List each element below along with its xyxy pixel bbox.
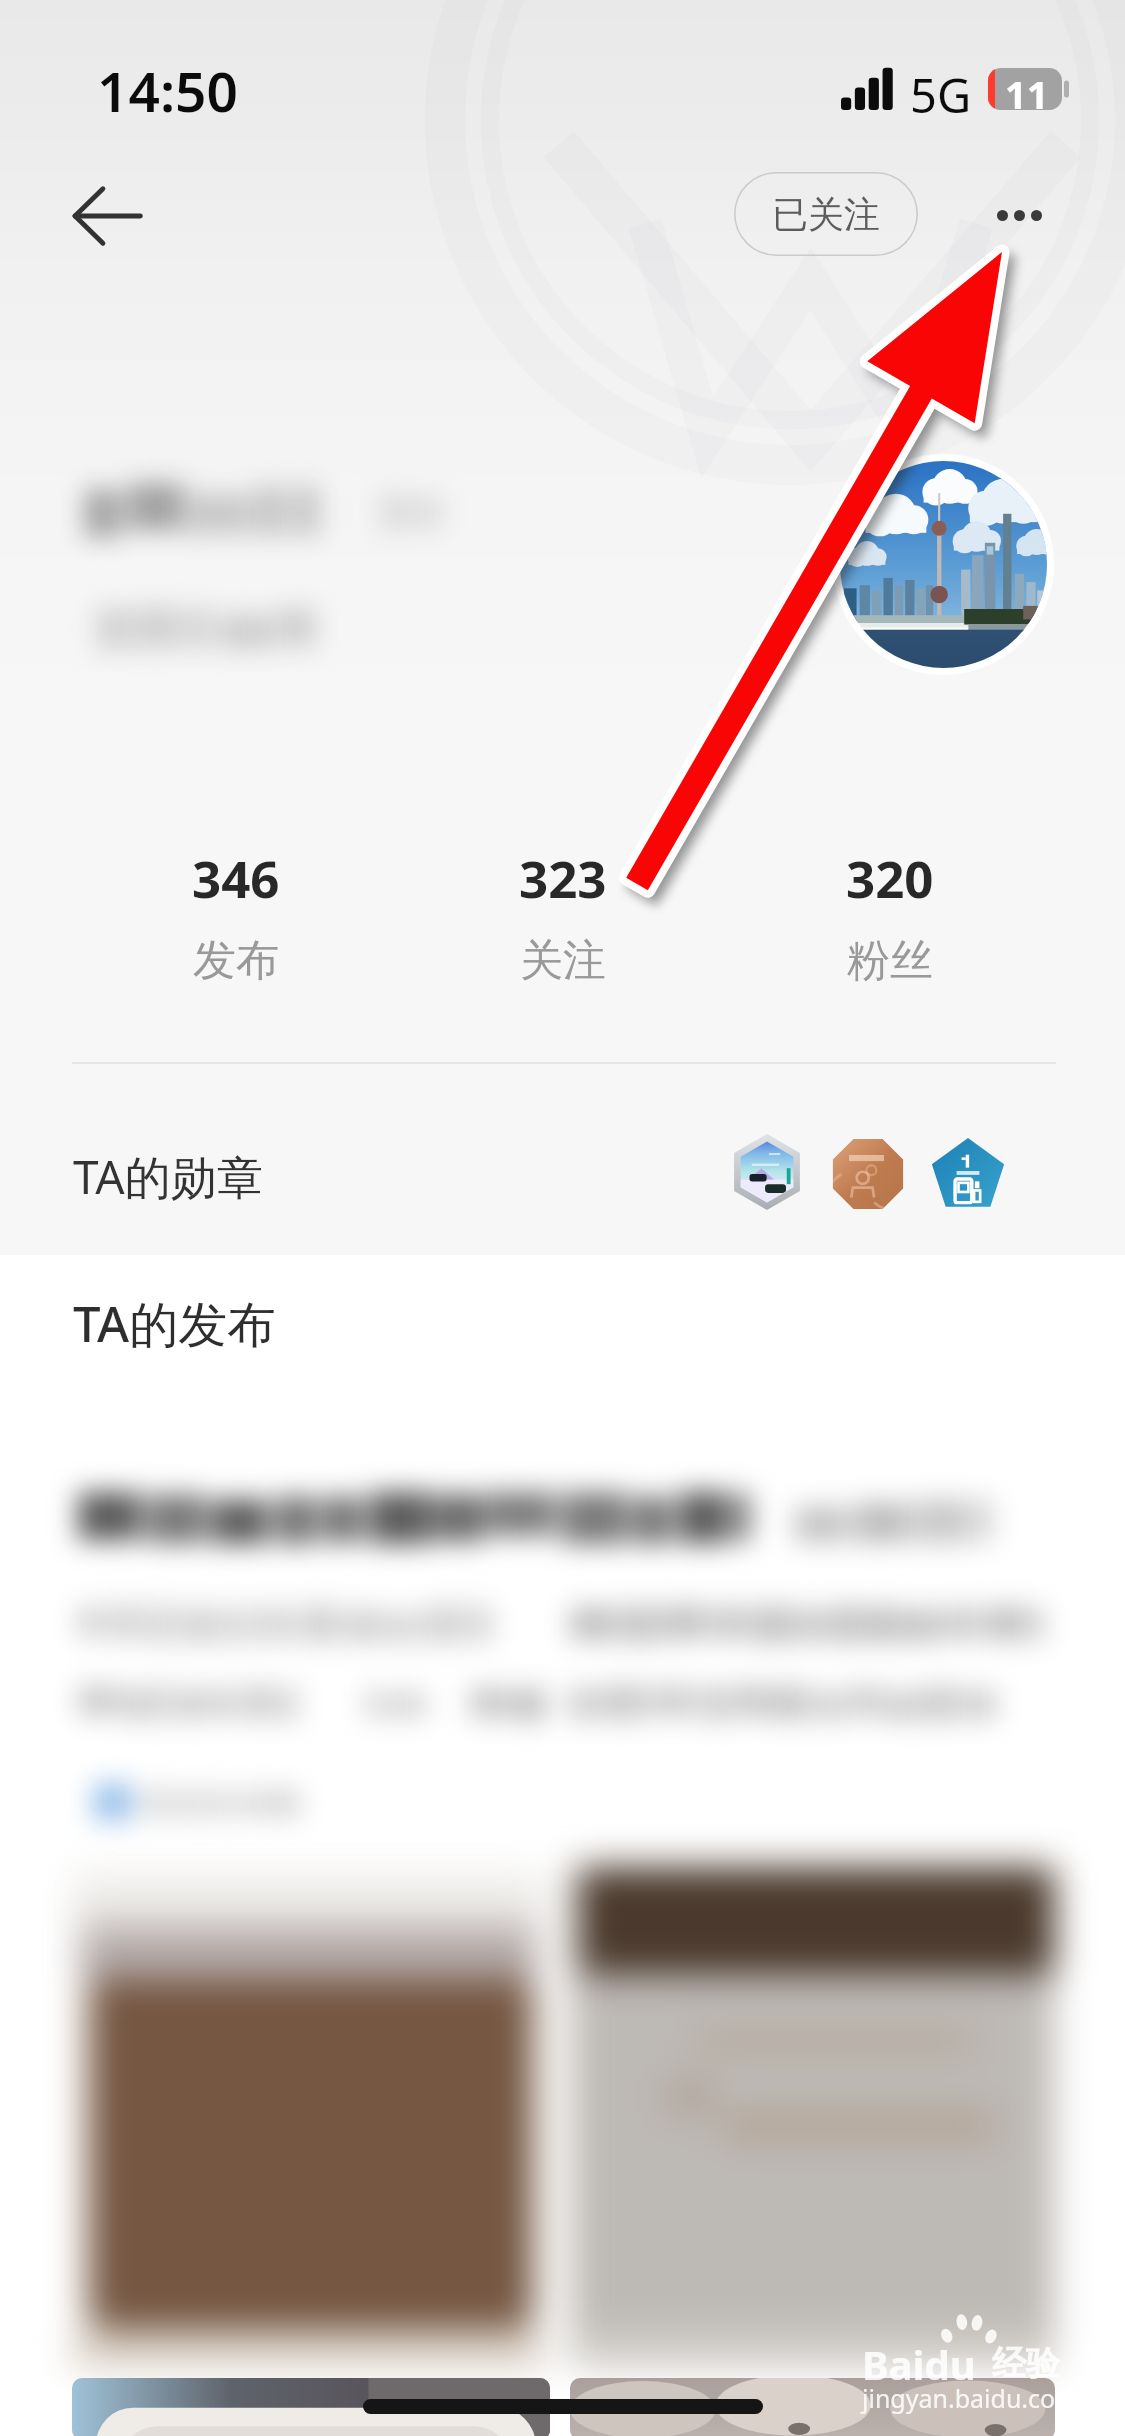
staticText: 11 <box>1005 68 1049 110</box>
staticText: 346 <box>192 843 280 912</box>
button[interactable]: 已关注 <box>734 172 918 256</box>
button[interactable]: 323 <box>399 843 726 988</box>
button[interactable]: Post photo 1 <box>72 1867 545 2367</box>
staticText: 323 <box>519 843 607 912</box>
staticText: 经验 <box>992 2342 1060 2385</box>
staticText: TA的发布 <box>73 1290 277 1357</box>
button[interactable]: Post photo 2 <box>570 1867 1055 2367</box>
button[interactable]: Profile photo <box>833 454 1054 675</box>
staticText: Baidu <box>862 2337 976 2391</box>
button[interactable]: 320 <box>726 843 1053 988</box>
button[interactable]: TA的勋章 <box>0 1100 1125 1248</box>
staticText: 已关注 <box>772 192 880 237</box>
staticText: 320 <box>846 843 934 912</box>
staticText: 关注 <box>520 934 606 988</box>
staticText: 14:50 <box>97 53 239 128</box>
staticText: jingyan.baidu.com <box>862 2381 1079 2415</box>
button[interactable]: 346 <box>72 843 399 988</box>
button[interactable]: Back <box>52 161 162 271</box>
staticText: 粉丝 <box>847 934 933 988</box>
staticText: 5G <box>910 63 972 127</box>
staticText: TA的勋章 <box>73 1145 263 1208</box>
button[interactable]: More options <box>965 172 1073 258</box>
button[interactable]: Post <box>60 1465 1065 1845</box>
staticText: 发布 <box>193 934 279 988</box>
